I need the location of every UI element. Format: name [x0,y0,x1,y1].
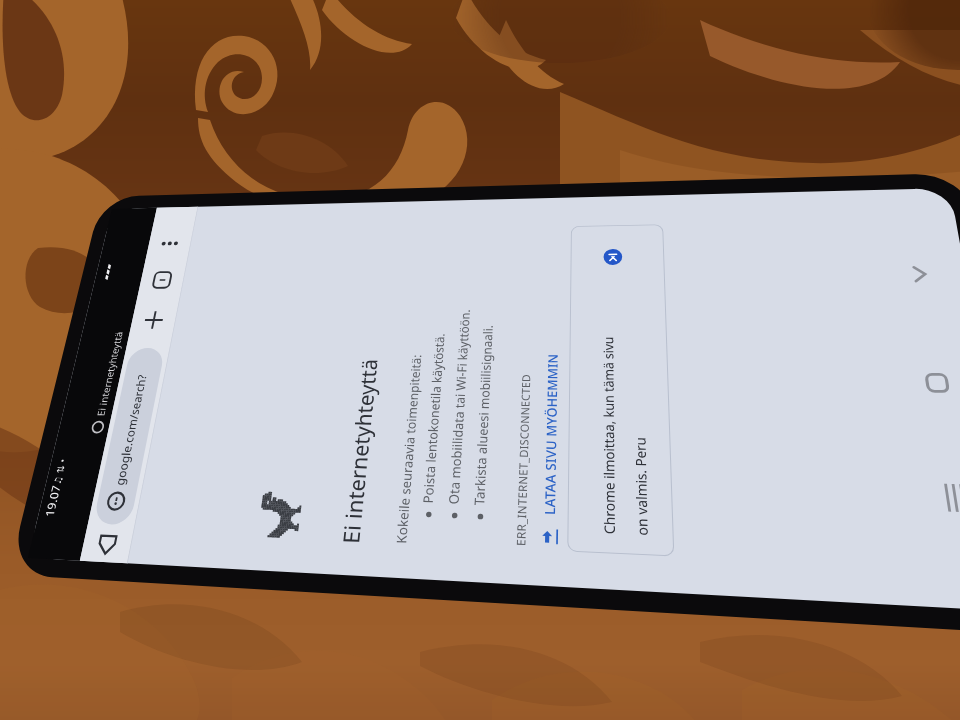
button[interactable] [0,0,960,720]
